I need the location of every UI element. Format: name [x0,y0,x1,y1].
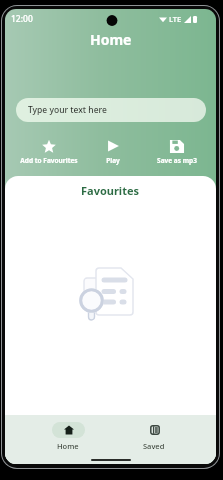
staticText: Favourites [81,183,140,198]
staticText: Saved [143,441,165,451]
staticText: Save as mp3 [157,156,197,165]
staticText: Home [57,441,79,451]
other: Saved [150,425,160,435]
button[interactable]: Type your text here [16,98,206,122]
button[interactable]: Save as mp3 [155,138,199,165]
staticText: Play [106,156,120,165]
button[interactable]: Saved [134,422,174,451]
other: Home [64,425,74,435]
staticText: Home [90,30,132,48]
button[interactable]: Home [48,422,88,451]
staticText: LTE [169,14,182,24]
button[interactable]: Play [103,138,123,165]
staticText: 12:00 [11,13,33,25]
staticText: Type your text here [28,104,107,116]
staticText: Add to Favourites [20,156,78,165]
button[interactable]: Add to Favourites [18,138,80,165]
